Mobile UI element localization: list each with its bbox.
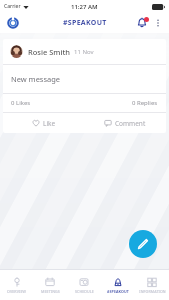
- staticText: #SPEAKOUT: [107, 289, 129, 294]
- staticText: SCHEDULE: [75, 289, 94, 294]
- button[interactable]: Comment: [84, 113, 166, 133]
- staticText: 11:27 AM: [71, 3, 98, 11]
- staticText: 0 Likes: [11, 99, 31, 107]
- button[interactable]: Rosie Smith: [3, 39, 166, 133]
- staticText: Comment: [115, 119, 146, 128]
- staticText: 11 Nov: [74, 48, 94, 56]
- staticText: Like: [43, 119, 56, 128]
- button[interactable]: Like: [3, 113, 84, 133]
- staticText: New message: [11, 74, 61, 84]
- staticText: 0 Replies: [132, 99, 158, 107]
- staticText: MEETINGS: [41, 289, 60, 294]
- button[interactable]: #SPEAKOUT: [101, 270, 135, 300]
- button[interactable]: App logo: [6, 16, 20, 30]
- staticText: Carrier: [4, 3, 21, 10]
- button[interactable]: Notifications: [134, 15, 150, 31]
- staticText: Rosie Smith: [28, 47, 71, 57]
- staticText: INFORMATION: [139, 289, 166, 294]
- button[interactable]: MEETINGS: [33, 270, 67, 300]
- button[interactable]: More options: [151, 16, 165, 30]
- staticText: #SPEAKOUT: [63, 18, 107, 28]
- button[interactable]: Compose new message: [129, 230, 157, 258]
- button[interactable]: OVERVIEW: [0, 270, 33, 300]
- button[interactable]: SCHEDULE: [67, 270, 101, 300]
- button[interactable]: INFORMATION: [135, 270, 169, 300]
- staticText: OVERVIEW: [7, 289, 26, 294]
